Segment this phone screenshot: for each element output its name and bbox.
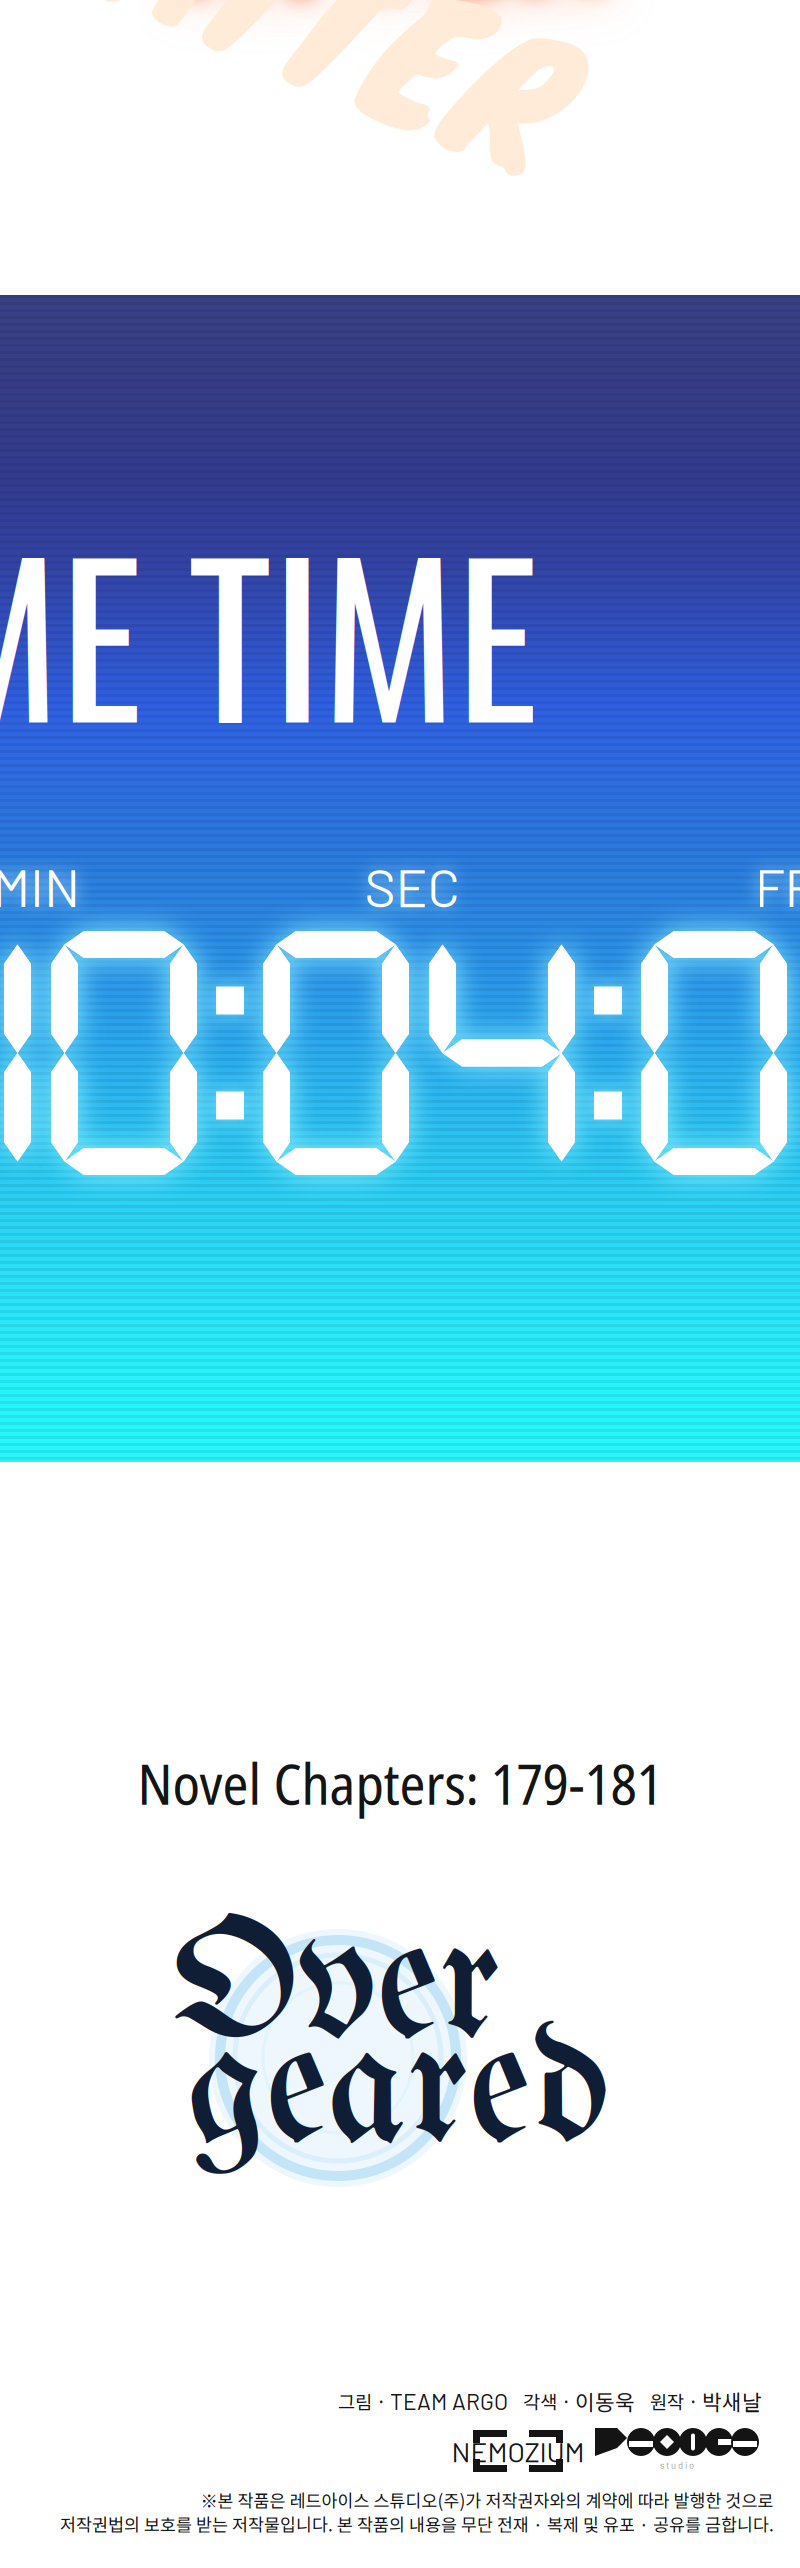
staticText: ※본 작품은 레드아이스 스튜디오(주)가 저작권자와의 계약에 따라 발행한 … [200,2487,773,2513]
staticText: · [372,2387,390,2414]
staticText: s t u d i o [660,2459,694,2471]
staticText: 원작 [650,2387,684,2414]
staticText: NEMOZIUM [451,2434,584,2468]
staticText: 이동욱 [575,2386,635,2416]
staticText: TEAM ARGO [390,2387,508,2415]
staticText: 박새날 [702,2386,762,2416]
staticText: Novel Chapters: 179-181 [137,1745,662,1821]
staticText: SEC [364,854,459,918]
staticText: GAME TIME [0,481,538,781]
staticText: FRAME [754,854,800,918]
staticText: 그림 [338,2387,372,2414]
staticText: geared [187,2006,609,2182]
staticText: 각색 [523,2387,557,2414]
staticText: ATTER [110,0,579,155]
staticText: 저작권법의 보호를 받는 저작물입니다. 본 작품의 내용을 무단 전재 · 복… [60,2511,774,2537]
staticText: · [557,2387,575,2414]
staticText: · [684,2387,702,2414]
staticText: Over [171,1902,501,2078]
staticText: MIN [0,854,80,918]
